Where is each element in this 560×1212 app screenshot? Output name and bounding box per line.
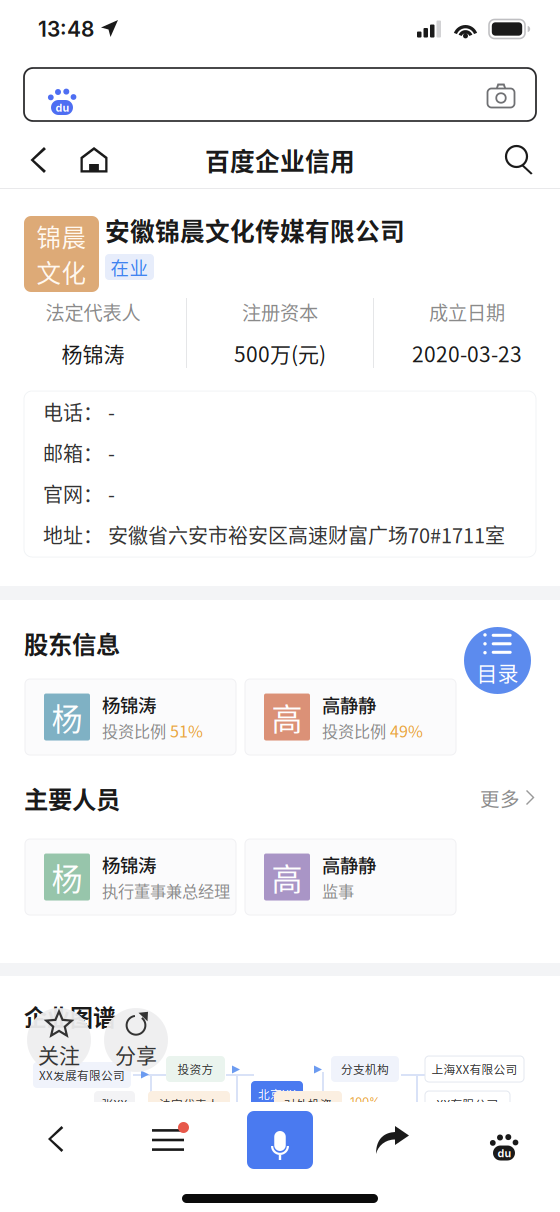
staticText: 500万(元) [234,338,326,368]
button[interactable]: 杨 [25,839,236,915]
staticText: 在业 [110,254,148,280]
staticText: 邮箱： [43,438,103,467]
button[interactable]: 首页 [66,131,122,189]
staticText: du [497,1147,511,1160]
staticText: 13:48 [38,16,94,42]
staticText: 杨锦涛 [102,851,156,878]
staticText: 企业图谱 [24,999,116,1033]
staticText: 安徽省六安市裕安区高速财富广场70#1711室 [108,520,505,549]
staticText: 杨锦涛 [61,338,124,368]
staticText: XX发展有限公司 [39,1066,125,1083]
staticText: - [108,479,115,508]
staticText: 法定代表人 [159,1095,219,1112]
staticText: 电话： [43,397,103,426]
button[interactable]: 菜单 [112,1102,224,1178]
staticText: 锦晨 [36,218,86,254]
staticText: 百度企业信用 [205,142,355,178]
button[interactable]: 分享 [336,1102,448,1178]
staticText: 高 [271,695,302,739]
staticText: 杨 [51,855,82,899]
staticText: 上海XX有限公司 [431,1060,517,1077]
staticText: 文化 [36,254,86,289]
staticText: 杨 [51,695,82,739]
staticText: 高静静 [322,691,376,718]
staticText: - [108,397,115,426]
staticText: 分享 [115,1039,157,1069]
button[interactable]: 返回 [10,131,66,189]
staticText: XX有限公司 [436,1095,498,1112]
staticText: 执行董事兼总经理 [102,879,230,902]
staticText: 更多 [480,784,520,812]
staticText: 关注 [38,1039,80,1069]
staticText: 张XX [101,1095,127,1112]
staticText: 注册资本 [242,298,318,326]
button[interactable]: 更多 [470,776,536,820]
button[interactable]: 杨 [25,679,236,755]
button[interactable]: 语音搜索 [224,1102,336,1178]
button[interactable]: 高 [245,839,456,915]
staticText: 投资方 [177,1060,213,1077]
staticText: - [108,438,115,467]
staticText: 2020-03-23 [412,338,522,368]
staticText: 51% [170,719,203,742]
staticText: 对外投资 [284,1095,332,1112]
staticText: 高 [271,855,302,899]
staticText: 高静静 [322,851,376,878]
staticText: 目录 [476,657,518,687]
staticText: 主要人员 [24,780,120,816]
staticText: 49% [390,719,423,742]
staticText: 地址： [43,520,103,549]
staticText: 投资比例 [322,719,390,742]
button[interactable]: 分享 [104,1008,168,1072]
button[interactable]: du [24,68,536,121]
staticText: 分支机构 [341,1060,389,1077]
button[interactable]: 高 [245,679,456,755]
staticText: 杨锦涛 [102,691,156,718]
button[interactable]: 百度 [448,1102,560,1178]
staticText: 成立日期 [429,298,505,326]
staticText: 投资比例 [102,719,170,742]
button[interactable]: 目录 [464,627,531,694]
staticText: 法定代表人 [45,298,140,326]
staticText: 监事 [322,879,354,902]
button[interactable]: 搜索 [492,131,548,189]
button[interactable]: 返回 [0,1102,112,1178]
staticText: 股东信息 [24,625,120,661]
staticText: 官网： [43,479,103,508]
button[interactable]: 关注 [27,1008,91,1072]
staticText: 100% [350,1095,380,1109]
staticText: du [55,101,69,114]
staticText: 北京XX [258,1085,296,1102]
staticText: 安徽锦晨文化传媒有限公司 [105,212,405,248]
